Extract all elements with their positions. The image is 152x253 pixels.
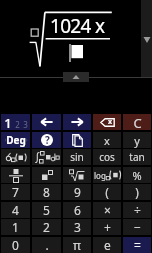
- button[interactable]: Integral: [32, 149, 61, 165]
- button[interactable]: Move right: [63, 114, 91, 130]
- button[interactable]: e: [93, 237, 121, 253]
- staticText: 0: [12, 237, 19, 253]
- button[interactable]: sin: [63, 149, 91, 165]
- button[interactable]: tan: [123, 149, 151, 165]
- staticText: y: [134, 133, 140, 148]
- staticText: π: [73, 237, 81, 253]
- button[interactable]: 9: [63, 184, 91, 200]
- staticText: x: [104, 133, 110, 148]
- button[interactable]: y: [123, 132, 151, 148]
- button[interactable]: Plus: [93, 219, 121, 235]
- button[interactable]: pi: [63, 237, 91, 253]
- staticText: 9: [74, 184, 81, 200]
- staticText: =: [134, 237, 141, 253]
- button[interactable]: Multiply: [93, 202, 121, 218]
- staticText: 1024 x: [50, 13, 105, 39]
- staticText: 8: [43, 184, 50, 200]
- button[interactable]: Equals: [123, 237, 151, 253]
- button[interactable]: Scroll down: [141, 0, 152, 77]
- button[interactable]: Copy: [63, 132, 91, 148]
- staticText: C: [133, 114, 142, 130]
- button[interactable]: Logarithm: [93, 167, 121, 183]
- staticText: ÷: [134, 202, 141, 218]
- button[interactable]: Backspace: [93, 114, 121, 130]
- button[interactable]: 5: [32, 202, 61, 218]
- button[interactable]: Collapse: [63, 72, 89, 82]
- staticText: e: [104, 237, 111, 253]
- staticText: .: [45, 237, 49, 253]
- button[interactable]: 3: [63, 219, 91, 235]
- staticText: 4: [12, 202, 19, 218]
- staticText: ): [135, 184, 139, 200]
- button[interactable]: 1: [1, 219, 30, 235]
- staticText: cos: [99, 150, 115, 164]
- staticText: tan: [129, 150, 145, 164]
- staticText: ‹: [4, 135, 7, 145]
- staticText: 2: [15, 119, 20, 130]
- button[interactable]: Percent: [123, 167, 151, 183]
- staticText: 6: [74, 202, 81, 218]
- button[interactable]: Help: [32, 132, 61, 148]
- button[interactable]: Close parenthesis: [123, 184, 151, 200]
- button[interactable]: x: [93, 132, 121, 148]
- button[interactable]: Angle unit: Degrees: [1, 132, 30, 148]
- button[interactable]: 0: [1, 237, 30, 253]
- staticText: 2: [43, 219, 50, 235]
- button[interactable]: Derivative: [1, 149, 30, 165]
- staticText: −: [134, 219, 141, 235]
- staticText: sin: [70, 150, 84, 164]
- button[interactable]: Divide: [123, 202, 151, 218]
- staticText: 1: [12, 219, 19, 235]
- staticText: ×: [104, 202, 111, 218]
- button[interactable]: Fraction: [1, 167, 30, 183]
- button[interactable]: cos: [93, 149, 121, 165]
- button[interactable]: 2: [32, 219, 61, 235]
- staticText: 1: [4, 114, 12, 130]
- button[interactable]: Power: [32, 167, 61, 183]
- staticText: log: [94, 170, 106, 181]
- button[interactable]: Clear: [123, 114, 151, 130]
- staticText: 7: [12, 184, 19, 200]
- button[interactable]: 4: [1, 202, 30, 218]
- button[interactable]: Open parenthesis: [93, 184, 121, 200]
- button[interactable]: Number keypad: [1, 114, 30, 130]
- staticText: ›: [25, 135, 28, 145]
- button[interactable]: Move left: [32, 114, 61, 130]
- button[interactable]: 7: [1, 184, 30, 200]
- staticText: (: [105, 184, 109, 200]
- button[interactable]: Decimal point: [32, 237, 61, 253]
- staticText: 3: [74, 219, 81, 235]
- staticText: x: [108, 117, 113, 127]
- staticText: Deg: [6, 133, 26, 147]
- button[interactable]: Minus: [123, 219, 151, 235]
- staticText: +: [104, 219, 111, 235]
- button[interactable]: 6: [63, 202, 91, 218]
- staticText: %: [132, 168, 142, 183]
- staticText: 5: [43, 202, 50, 218]
- button[interactable]: Root: [63, 167, 91, 183]
- staticText: ?: [45, 133, 50, 147]
- staticText: 3: [23, 119, 28, 130]
- button[interactable]: 8: [32, 184, 61, 200]
